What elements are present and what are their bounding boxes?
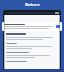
- button[interactable]: Accept: [2, 22, 62, 31]
- staticText: Return: [25, 2, 40, 8]
- button[interactable]: Accept: [56, 25, 60, 28]
- staticText: to normal settings: [22, 9, 43, 12]
